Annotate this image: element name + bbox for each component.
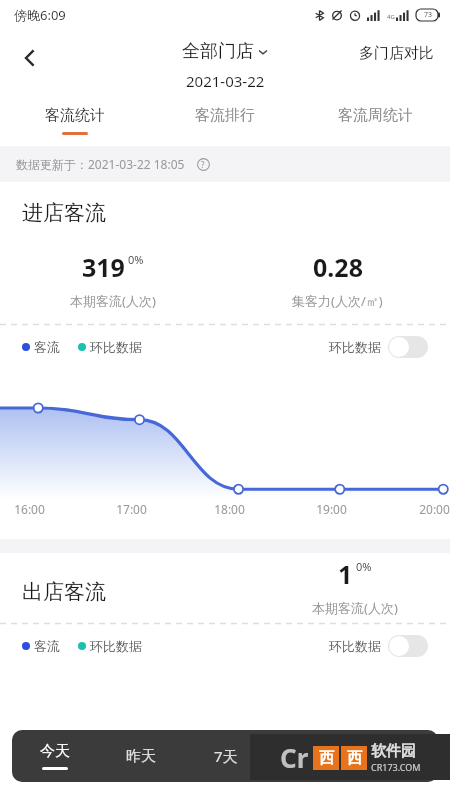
staticText: 客流 xyxy=(34,339,60,355)
button[interactable]: Back xyxy=(6,34,54,82)
button[interactable]: 自定 xyxy=(353,730,438,782)
staticText: 客流周统计 xyxy=(338,106,413,125)
button[interactable]: 环比数据 xyxy=(329,336,428,358)
button[interactable]: 多门店对比 xyxy=(351,38,442,69)
button[interactable]: 30天 xyxy=(268,730,353,782)
staticText: 19:00 xyxy=(316,501,347,517)
staticText: 0.28 xyxy=(313,250,363,284)
staticText: 进店客流 xyxy=(22,200,106,226)
staticText: 环比数据 xyxy=(329,638,381,654)
button[interactable]: 客流 xyxy=(22,339,60,355)
button[interactable]: Help xyxy=(193,154,213,174)
staticText: 16:00 xyxy=(14,501,45,517)
button[interactable]: 昨天 xyxy=(98,730,183,782)
staticText: 自定 xyxy=(381,747,411,766)
staticText: 全部门店 xyxy=(182,40,254,63)
staticText: 环比数据 xyxy=(90,339,142,355)
staticText: 西 xyxy=(347,749,362,768)
staticText: 2021-03-22 xyxy=(186,71,265,91)
staticText: 319 xyxy=(82,250,125,284)
staticText: 昨天 xyxy=(126,747,156,766)
staticText: 傍晚6:09 xyxy=(14,6,66,24)
staticText: 客流统计 xyxy=(45,106,105,125)
staticText: 4G xyxy=(387,13,395,21)
staticText: 1 xyxy=(338,557,353,591)
staticText: 本期客流(人次) xyxy=(312,599,398,617)
staticText: 18:00 xyxy=(214,501,245,517)
button[interactable]: 客流 xyxy=(22,638,60,654)
staticText: 数据更新于：2021-03-22 18:05 xyxy=(16,156,185,172)
staticText: 0% xyxy=(356,559,372,574)
button[interactable]: 客流统计 xyxy=(0,106,150,146)
staticText: 0% xyxy=(128,252,144,267)
staticText: 客流 xyxy=(34,638,60,654)
staticText: 多门店对比 xyxy=(359,44,434,63)
staticText: 20:00 xyxy=(419,501,450,517)
button[interactable]: 全部门店 xyxy=(176,38,274,65)
staticText: 客流排行 xyxy=(195,106,255,125)
button[interactable]: 客流排行 xyxy=(150,106,300,146)
staticText: CR173.COM xyxy=(371,761,421,773)
staticText: 7天 xyxy=(214,746,238,766)
staticText: 软件园 xyxy=(371,742,416,761)
button[interactable]: 环比数据 xyxy=(78,339,142,355)
staticText: Cr xyxy=(280,740,309,775)
staticText: ? xyxy=(201,159,205,170)
staticText: 西 xyxy=(319,749,334,768)
staticText: 17:00 xyxy=(116,501,147,517)
staticText: 集客力(人次/㎡) xyxy=(292,292,383,310)
button[interactable]: 客流周统计 xyxy=(300,106,450,146)
button[interactable]: 环比数据 xyxy=(78,638,142,654)
button[interactable]: 今天 xyxy=(12,730,98,782)
staticText: 本期客流(人次) xyxy=(70,292,156,310)
button[interactable]: 环比数据 xyxy=(329,635,428,657)
staticText: 今天 xyxy=(40,742,70,761)
staticText: 73 xyxy=(424,10,433,20)
button[interactable]: 7天 xyxy=(183,730,268,782)
staticText: 30天 xyxy=(294,746,327,766)
staticText: 环比数据 xyxy=(329,339,381,355)
staticText: 出店客流 xyxy=(22,579,106,605)
staticText: 环比数据 xyxy=(90,638,142,654)
